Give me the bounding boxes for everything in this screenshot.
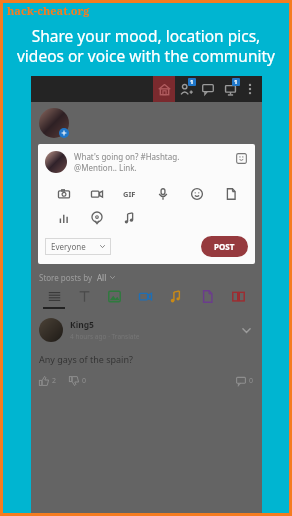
button[interactable]: book <box>223 290 254 309</box>
button[interactable]: Location <box>80 210 113 225</box>
button[interactable]: Home <box>153 76 175 102</box>
button[interactable]: mus <box>161 290 192 309</box>
button[interactable]: File <box>214 186 248 201</box>
staticText: What's going on? #Hashtag. <box>74 151 180 162</box>
button[interactable]: Music <box>113 210 147 225</box>
staticText: POST <box>214 241 235 252</box>
button[interactable]: King5 <box>39 318 254 386</box>
button[interactable]: doc <box>192 290 223 309</box>
button[interactable]: Messages <box>197 76 219 102</box>
button[interactable]: text <box>69 290 99 309</box>
staticText: 0 <box>82 376 87 386</box>
button[interactable]: img <box>99 290 130 309</box>
button[interactable]: Poll <box>47 210 80 225</box>
button[interactable]: Store posts by <box>39 272 262 283</box>
staticText: 0 <box>249 376 254 386</box>
button[interactable]: Post menu <box>238 322 254 338</box>
button[interactable]: 0 <box>69 376 87 386</box>
staticText: Everyone <box>51 241 86 252</box>
button[interactable]: 2 <box>39 376 57 386</box>
staticText: 4 hours ago · Translate <box>70 332 140 341</box>
staticText: King5 <box>70 319 94 331</box>
button[interactable]: Video <box>80 186 113 201</box>
button[interactable]: Emoji <box>180 186 214 201</box>
staticText: Any gays of the spain? <box>39 353 133 365</box>
staticText: All <box>97 272 107 283</box>
button[interactable]: Add friend <box>175 76 197 102</box>
button[interactable]: GIF <box>113 186 146 201</box>
button[interactable]: Voice <box>146 186 180 201</box>
staticText: Store posts by <box>39 272 93 283</box>
staticText: 2 <box>52 376 57 386</box>
button[interactable]: Notifications <box>219 76 241 102</box>
button[interactable] <box>45 151 67 173</box>
button[interactable]: POST <box>214 241 235 252</box>
staticText: GIF <box>123 189 136 199</box>
button[interactable]: Sticker <box>234 151 248 165</box>
button[interactable]: vid <box>130 290 161 309</box>
button[interactable]: Photo <box>47 186 80 201</box>
staticText: Share your mood, location pics, videos o… <box>13 25 279 66</box>
staticText: 1 <box>234 78 238 86</box>
button[interactable]: Everyone <box>51 241 105 252</box>
button[interactable] <box>39 108 69 138</box>
staticText: hack-cheat.org <box>7 3 90 18</box>
button[interactable]: 0 <box>236 376 254 386</box>
button[interactable]: What's going on? #Hashtag. <box>74 151 234 173</box>
staticText: 1 <box>190 78 194 86</box>
button[interactable]: list <box>39 290 69 309</box>
button[interactable]: More options <box>241 76 259 102</box>
staticText: @Mention.. Link. <box>74 162 137 173</box>
button[interactable]: Add story <box>59 128 69 138</box>
